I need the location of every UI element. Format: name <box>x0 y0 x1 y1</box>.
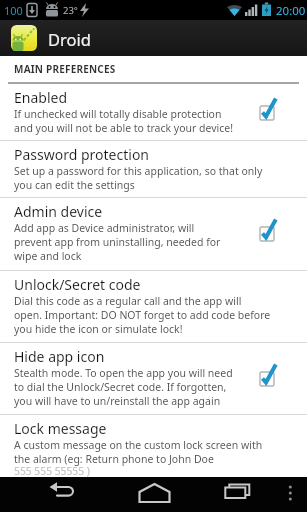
staticText: If unchecked will totally disable protec… <box>14 107 307 135</box>
staticText: 100 <box>4 3 23 18</box>
button[interactable]: Hide app icon <box>0 343 307 414</box>
staticText: Lock message <box>14 419 107 438</box>
staticText: Admin device <box>14 202 103 221</box>
staticText: Droid <box>48 28 91 50</box>
staticText: Set up a password for this application, … <box>14 164 307 192</box>
staticText: Unlock/Secret code <box>14 275 141 294</box>
button[interactable]: Password protection <box>0 141 307 197</box>
staticText: A custom message on the custom lock scre… <box>14 438 307 466</box>
button[interactable]: Lock message <box>0 415 307 477</box>
button[interactable] <box>0 477 103 512</box>
button[interactable]: Enabled <box>0 84 307 140</box>
staticText: MAIN PREFERENCES <box>14 62 116 76</box>
staticText: Add app as Device administrator, will pr… <box>14 221 307 263</box>
staticText: 20:00 <box>276 3 306 19</box>
staticText: 23° <box>63 4 78 17</box>
staticText: Password protection <box>14 145 150 164</box>
button[interactable]: Admin device <box>0 198 307 270</box>
button[interactable]: Unlock/Secret code <box>0 271 307 342</box>
button[interactable] <box>205 477 307 512</box>
staticText: Dial this code as a regular call and the… <box>14 294 307 336</box>
staticText: Hide app icon <box>14 347 105 366</box>
button[interactable] <box>103 477 205 512</box>
staticText: 555 555 55555 ) <box>14 464 90 478</box>
staticText: Enabled <box>14 88 68 107</box>
staticText: Stealth mode. To open the app you will n… <box>14 366 307 408</box>
